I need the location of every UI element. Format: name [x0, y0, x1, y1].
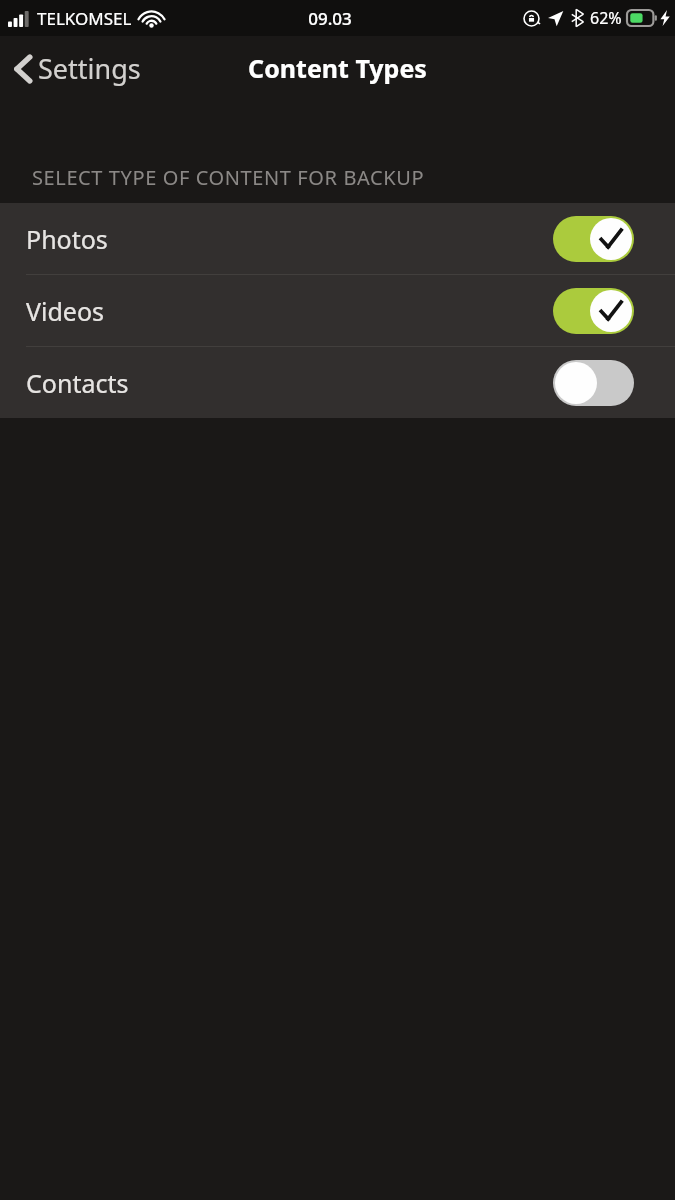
button[interactable]: Toggle off: [553, 360, 634, 406]
button[interactable]: Videos: [0, 275, 675, 346]
button[interactable]: Toggle on: [553, 288, 634, 334]
staticText: 62%: [590, 7, 622, 29]
button[interactable]: Photos: [0, 203, 675, 274]
staticText: Content Types: [248, 51, 427, 85]
staticText: TELKOMSEL: [37, 7, 132, 30]
staticText: Contacts: [26, 366, 129, 400]
staticText: Settings: [38, 50, 141, 87]
button[interactable]: Toggle on: [553, 216, 634, 262]
staticText: Photos: [26, 222, 108, 256]
button[interactable]: Settings: [0, 44, 155, 93]
staticText: SELECT TYPE OF CONTENT FOR BACKUP: [32, 164, 425, 191]
staticText: 09.03: [308, 7, 352, 30]
button[interactable]: Contacts: [0, 347, 675, 418]
staticText: Videos: [26, 294, 105, 328]
